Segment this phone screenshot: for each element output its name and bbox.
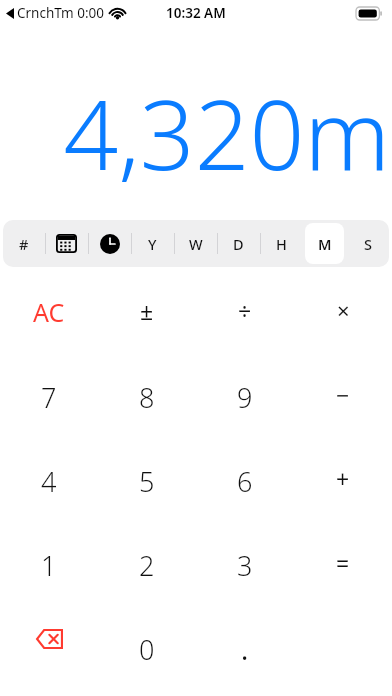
button[interactable]: S bbox=[346, 220, 389, 267]
button[interactable]: × bbox=[294, 281, 392, 365]
button[interactable]: = bbox=[294, 533, 392, 617]
staticText: 6 bbox=[237, 463, 253, 500]
staticText: D bbox=[233, 234, 244, 254]
staticText: CrnchTm 0:00 bbox=[17, 4, 105, 22]
staticText: ± bbox=[140, 295, 154, 326]
other: Clock bbox=[100, 234, 120, 254]
button[interactable]: D bbox=[217, 220, 260, 267]
button[interactable]: Y bbox=[131, 220, 174, 267]
staticText: 2 bbox=[139, 547, 155, 584]
button[interactable]: W bbox=[174, 220, 217, 267]
other: Calendar bbox=[56, 234, 77, 253]
button[interactable]: ± bbox=[98, 281, 196, 365]
button[interactable]: 4 bbox=[0, 449, 98, 533]
staticText: 10:32 AM bbox=[166, 4, 226, 22]
button[interactable]: AC bbox=[0, 281, 98, 365]
button[interactable]: 0 bbox=[98, 617, 196, 696]
staticText: . bbox=[241, 631, 249, 668]
staticText: 7 bbox=[41, 379, 57, 416]
button[interactable]: 7 bbox=[0, 365, 98, 449]
button[interactable]: 5 bbox=[98, 449, 196, 533]
staticText: H bbox=[276, 234, 287, 254]
staticText: W bbox=[189, 234, 203, 254]
staticText: + bbox=[336, 463, 350, 494]
button[interactable]: 9 bbox=[196, 365, 294, 449]
button[interactable]: Delete bbox=[0, 617, 98, 696]
staticText: Y bbox=[148, 234, 157, 254]
button[interactable]: 8 bbox=[98, 365, 196, 449]
other: Delete bbox=[36, 629, 63, 649]
staticText: × bbox=[337, 295, 350, 325]
staticText: S bbox=[364, 234, 372, 254]
staticText: = bbox=[336, 547, 350, 578]
staticText: 1 bbox=[41, 547, 57, 584]
staticText: 0 bbox=[139, 631, 155, 668]
button[interactable]: 1 bbox=[0, 533, 98, 617]
staticText: 4,320m bbox=[63, 67, 390, 198]
button[interactable]: Calendar bbox=[45, 220, 88, 267]
button[interactable]: . bbox=[196, 617, 294, 696]
button[interactable]: 6 bbox=[196, 449, 294, 533]
button[interactable]: # bbox=[3, 220, 45, 267]
staticText: M bbox=[318, 234, 332, 254]
staticText: AC bbox=[33, 295, 65, 329]
staticText: 4 bbox=[41, 463, 57, 500]
staticText: 3 bbox=[237, 547, 253, 584]
button[interactable]: − bbox=[294, 365, 392, 449]
button[interactable]: H bbox=[260, 220, 303, 267]
button[interactable]: + bbox=[294, 449, 392, 533]
button[interactable]: 2 bbox=[98, 533, 196, 617]
staticText: − bbox=[336, 379, 350, 410]
button[interactable]: ÷ bbox=[196, 281, 294, 365]
staticText: # bbox=[19, 234, 29, 254]
staticText: 9 bbox=[237, 379, 253, 416]
staticText: 5 bbox=[139, 463, 155, 500]
staticText: 8 bbox=[139, 379, 155, 416]
button[interactable]: Clock bbox=[88, 220, 131, 267]
staticText: ÷ bbox=[238, 295, 252, 326]
button[interactable]: 3 bbox=[196, 533, 294, 617]
button[interactable]: M bbox=[303, 220, 346, 267]
